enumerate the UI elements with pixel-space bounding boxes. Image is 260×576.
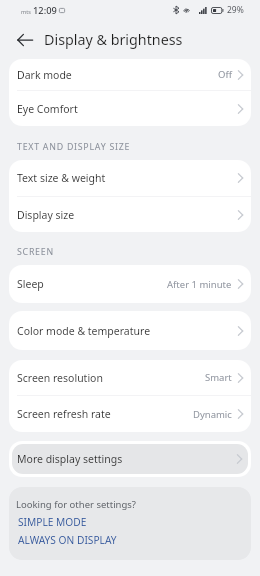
button[interactable]: Eye Comfort: [9, 91, 251, 126]
button[interactable]: Text size & weight: [9, 160, 251, 196]
staticText: Color mode & temperature: [17, 324, 151, 338]
staticText: After 1 minute: [167, 278, 232, 291]
staticText: Dynamic: [193, 408, 232, 421]
staticText: 29%: [227, 4, 244, 16]
button[interactable]: Color mode & temperature: [9, 311, 251, 350]
staticText: Screen refresh rate: [17, 407, 111, 421]
staticText: ALWAYS ON DISPLAY: [18, 533, 117, 547]
staticText: SCREEN: [17, 246, 54, 258]
button[interactable]: ALWAYS ON DISPLAY: [16, 533, 117, 547]
staticText: Looking for other settings?: [16, 498, 136, 511]
staticText: SIMPLE MODE: [18, 515, 87, 529]
staticText: Off: [218, 68, 232, 81]
staticText: Sleep: [17, 277, 44, 291]
button[interactable]: SIMPLE MODE: [16, 515, 87, 529]
staticText: Smart: [205, 371, 232, 384]
button[interactable]: Back: [0, 21, 49, 59]
staticText: Display size: [17, 208, 75, 222]
button[interactable]: Display size: [9, 197, 251, 232]
staticText: Eye Comfort: [17, 102, 78, 116]
staticText: Dark mode: [17, 68, 72, 82]
button[interactable]: Dark mode: [9, 59, 251, 90]
button[interactable]: Screen refresh rate: [9, 396, 251, 432]
staticText: TEXT AND DISPLAY SIZE: [17, 141, 131, 153]
staticText: More display settings: [17, 452, 123, 466]
staticText: mts: [21, 8, 31, 15]
button[interactable]: Screen resolution: [9, 360, 251, 395]
staticText: Screen resolution: [17, 371, 103, 385]
button[interactable]: Sleep: [9, 265, 251, 303]
staticText: Text size & weight: [17, 171, 106, 185]
button[interactable]: More display settings: [12, 444, 248, 474]
staticText: Display & brightness: [44, 30, 183, 49]
staticText: 12:09: [33, 4, 57, 17]
